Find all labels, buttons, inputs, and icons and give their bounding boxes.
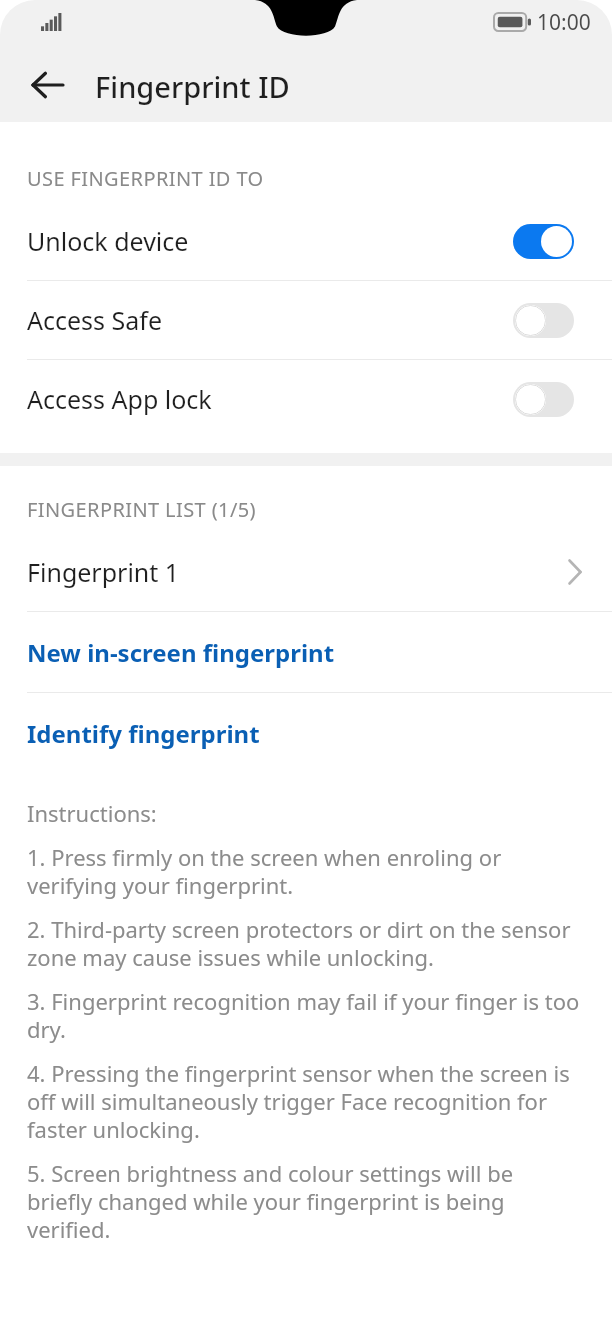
button[interactable]: Back xyxy=(20,57,76,113)
staticText: 3. Fingerprint recognition may fail if y… xyxy=(27,986,582,1044)
button[interactable]: New in-screen fingerprint xyxy=(0,612,612,692)
button[interactable]: Unlock device xyxy=(0,202,612,280)
staticText: 4. Pressing the fingerprint sensor when … xyxy=(27,1058,582,1144)
staticText: 5. Screen brightness and colour settings… xyxy=(27,1158,582,1244)
button[interactable]: Access Safe xyxy=(0,281,612,359)
staticText: 2. Third-party screen protectors or dirt… xyxy=(27,914,582,972)
button[interactable]: Fingerprint 1 xyxy=(0,533,612,611)
staticText: Instructions: xyxy=(27,798,157,828)
button[interactable]: Access App lock xyxy=(0,360,612,438)
staticText: USE FINGERPRINT ID TO xyxy=(27,165,264,192)
staticText: New in-screen fingerprint xyxy=(27,636,335,669)
staticText: Fingerprint ID xyxy=(95,67,290,106)
staticText: FINGERPRINT LIST (1/5) xyxy=(27,496,256,523)
staticText: 10:00 xyxy=(537,8,591,37)
staticText: Access Safe xyxy=(27,303,513,337)
staticText: Access App lock xyxy=(27,382,513,416)
staticText: Fingerprint 1 xyxy=(27,555,568,589)
staticText: Identify fingerprint xyxy=(27,717,260,750)
button[interactable]: Identify fingerprint xyxy=(0,693,612,773)
staticText: 1. Press firmly on the screen when enrol… xyxy=(27,842,582,900)
staticText: Unlock device xyxy=(27,224,513,258)
